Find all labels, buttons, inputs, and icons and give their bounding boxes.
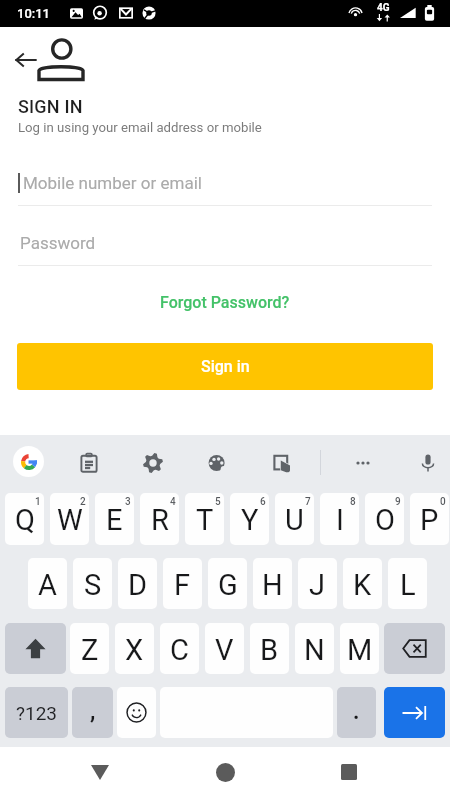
button[interactable]: Password: [0, 224, 450, 262]
staticText: .: [353, 699, 360, 725]
button[interactable]: S: [73, 558, 112, 609]
button[interactable]: ,: [72, 687, 113, 738]
button[interactable]: I: [320, 493, 359, 545]
button[interactable]: L: [388, 558, 427, 609]
button[interactable]: Clipboard: [75, 449, 102, 476]
staticText: F: [174, 568, 191, 602]
staticText: O: [375, 503, 395, 537]
staticText: I: [336, 503, 344, 537]
button[interactable]: More options: [349, 449, 376, 476]
staticText: H: [262, 568, 283, 602]
staticText: 10:11: [17, 6, 51, 21]
staticText: Sign in: [201, 357, 250, 376]
staticText: Mobile number or email: [23, 173, 202, 193]
button[interactable]: F: [163, 558, 202, 609]
staticText: 5: [215, 496, 221, 508]
staticText: Forgot Password?: [160, 293, 290, 312]
button[interactable]: Backspace: [384, 623, 445, 674]
button[interactable]: E: [95, 493, 134, 545]
staticText: 8: [350, 496, 356, 508]
staticText: Y: [241, 503, 259, 537]
staticText: W: [57, 503, 83, 537]
button[interactable]: A: [28, 558, 67, 609]
button[interactable]: Back: [76, 747, 124, 797]
staticText: Log in using your email address or mobil…: [18, 120, 262, 135]
button[interactable]: Home: [201, 747, 249, 797]
button[interactable]: W: [50, 493, 89, 545]
staticText: Password: [20, 233, 96, 253]
button[interactable]: H: [253, 558, 292, 609]
staticText: 4G: [377, 2, 390, 14]
button[interactable]: Forgot Password?: [150, 288, 300, 317]
staticText: 2: [80, 496, 86, 508]
button[interactable]: T: [185, 493, 224, 545]
staticText: A: [38, 568, 57, 602]
staticText: G: [218, 568, 238, 602]
staticText: T: [196, 503, 214, 537]
button[interactable]: R: [140, 493, 179, 545]
button[interactable]: B: [250, 623, 289, 674]
staticText: P: [420, 503, 439, 537]
button[interactable]: Sign in: [17, 343, 433, 390]
staticText: E: [106, 503, 123, 537]
button[interactable]: Theme: [203, 449, 230, 476]
staticText: M: [347, 633, 373, 667]
staticText: K: [353, 568, 372, 602]
button[interactable]: N: [295, 623, 334, 674]
staticText: J: [309, 568, 326, 602]
button[interactable]: O: [365, 493, 404, 545]
button[interactable]: M: [340, 623, 379, 674]
staticText: ?123: [16, 702, 58, 724]
staticText: X: [125, 633, 144, 667]
staticText: V: [215, 633, 234, 667]
button[interactable]: Z: [70, 623, 109, 674]
staticText: C: [170, 633, 189, 667]
button[interactable]: Y: [230, 493, 269, 545]
staticText: 3: [125, 496, 131, 508]
button[interactable]: P: [410, 493, 449, 545]
button[interactable]: .: [337, 687, 376, 738]
button[interactable]: Q: [5, 493, 44, 545]
button[interactable]: V: [205, 623, 244, 674]
staticText: ,: [90, 699, 96, 725]
staticText: SIGN IN: [18, 96, 83, 117]
button[interactable]: Mobile number or email: [0, 164, 450, 202]
staticText: 7: [305, 496, 311, 508]
button[interactable]: Emoji: [117, 687, 156, 738]
staticText: Q: [15, 503, 35, 537]
button[interactable]: Settings: [139, 449, 166, 476]
staticText: N: [304, 633, 325, 667]
button[interactable]: X: [115, 623, 154, 674]
staticText: 9: [395, 496, 401, 508]
staticText: 1: [35, 496, 41, 508]
staticText: R: [151, 503, 169, 537]
button[interactable]: D: [118, 558, 157, 609]
staticText: U: [285, 503, 304, 537]
button[interactable]: Sticker: [268, 449, 295, 476]
button[interactable]: Shift: [5, 623, 66, 674]
button[interactable]: C: [160, 623, 199, 674]
button[interactable]: G: [208, 558, 247, 609]
button[interactable]: J: [298, 558, 337, 609]
button[interactable]: Enter: [384, 687, 445, 738]
staticText: B: [260, 633, 279, 667]
button[interactable]: Recent apps: [325, 747, 373, 797]
staticText: 4: [170, 496, 176, 508]
button[interactable]: Google Assistant: [13, 446, 44, 477]
button[interactable]: K: [343, 558, 382, 609]
staticText: Z: [81, 633, 99, 667]
button[interactable]: Back: [6, 40, 46, 80]
button[interactable]: U: [275, 493, 314, 545]
staticText: 6: [260, 496, 266, 508]
button[interactable]: ?123: [5, 687, 68, 738]
staticText: S: [84, 568, 102, 602]
staticText: L: [400, 568, 416, 602]
staticText: D: [128, 568, 148, 602]
staticText: 0: [440, 496, 446, 508]
button[interactable]: Voice input: [414, 449, 441, 476]
